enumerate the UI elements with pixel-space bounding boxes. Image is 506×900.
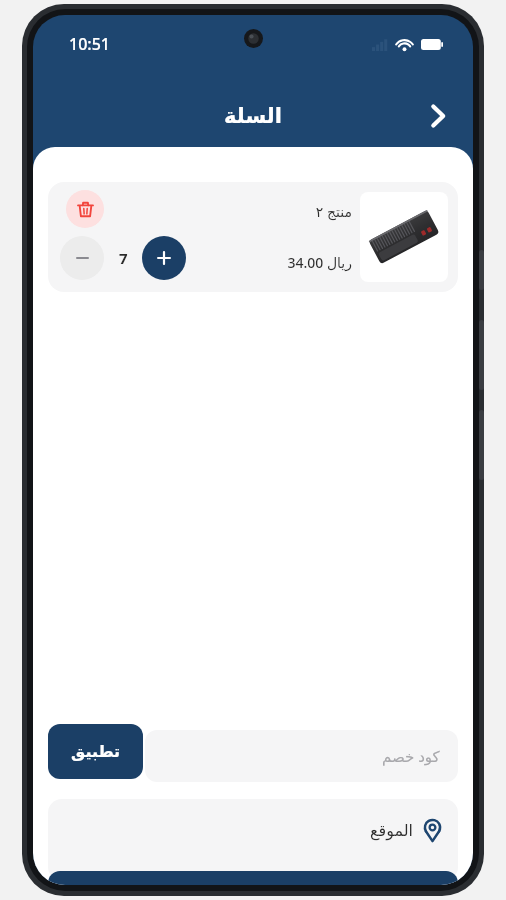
- button[interactable]: Decrease quantity: [60, 236, 104, 280]
- button[interactable]: Increase quantity: [142, 236, 186, 280]
- staticText: الموقع: [370, 821, 413, 840]
- button[interactable]: Remove item: [66, 190, 104, 228]
- staticText: 7: [119, 248, 128, 268]
- button[interactable]: Back: [415, 94, 459, 138]
- button[interactable]: تطبيق: [48, 724, 143, 779]
- staticText: تطبيق: [71, 742, 121, 761]
- staticText: 10:51: [69, 33, 110, 55]
- staticText: 34.00 ريال: [287, 253, 352, 272]
- button[interactable]: كود خصم: [145, 730, 458, 782]
- button[interactable]: [48, 871, 458, 885]
- staticText: كود خصم: [382, 746, 440, 766]
- button[interactable]: منتج ٢: [48, 182, 458, 292]
- staticText: منتج ٢: [315, 202, 352, 221]
- button[interactable]: الموقع: [48, 799, 458, 881]
- staticText: السلة: [224, 104, 282, 128]
